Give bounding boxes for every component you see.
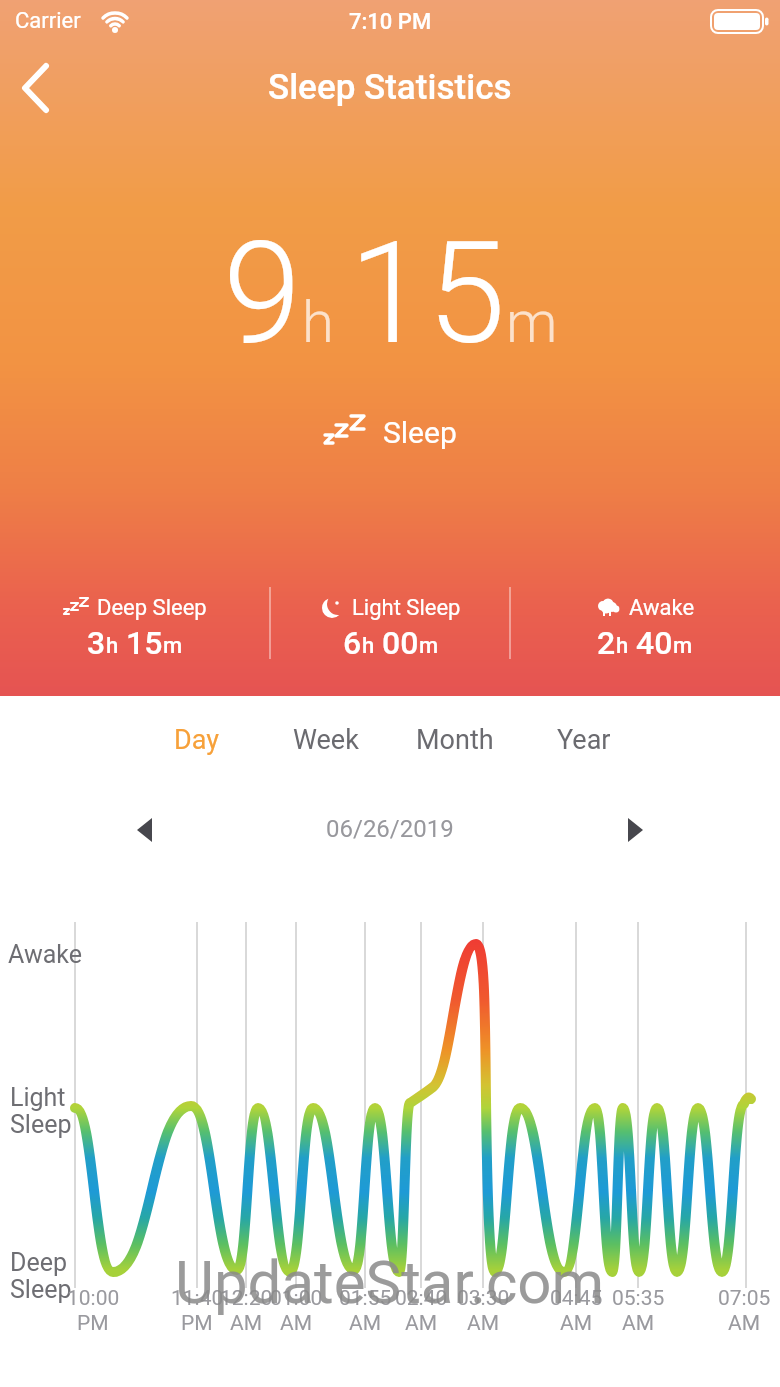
staticText: h: [362, 633, 375, 659]
staticText: Week: [293, 724, 359, 756]
button[interactable]: Day: [132, 714, 261, 766]
staticText: PM: [181, 1311, 213, 1336]
staticText: Awake: [8, 940, 82, 969]
staticText: Deep Sleep: [97, 595, 207, 621]
staticText: Deep: [10, 1248, 67, 1277]
staticText: Sleep Statistics: [268, 67, 512, 108]
staticText: AM: [349, 1311, 382, 1336]
staticText: h: [302, 288, 334, 356]
staticText: 01:00: [270, 1286, 323, 1311]
staticText: 02:40: [395, 1286, 448, 1311]
button[interactable]: Week: [261, 714, 390, 766]
staticText: 04:45: [550, 1286, 603, 1311]
staticText: 7:10 PM: [349, 9, 432, 35]
button[interactable]: [8, 60, 64, 116]
staticText: 00: [382, 624, 419, 662]
button[interactable]: Awake: [515, 589, 775, 667]
staticText: h: [616, 633, 629, 659]
staticText: m: [506, 288, 558, 356]
button[interactable]: Deep Sleep: [5, 589, 265, 667]
staticText: Sleep: [10, 1110, 72, 1139]
staticText: Light: [10, 1083, 66, 1112]
staticText: m: [673, 633, 693, 659]
staticText: AM: [622, 1311, 655, 1336]
staticText: 01:55: [339, 1286, 392, 1311]
staticText: AM: [405, 1311, 438, 1336]
button[interactable]: Light Sleep: [260, 589, 520, 667]
staticText: Awake: [629, 595, 695, 621]
staticText: AM: [280, 1311, 313, 1336]
staticText: Light Sleep: [352, 595, 461, 621]
staticText: AM: [728, 1311, 761, 1336]
staticText: Year: [557, 724, 611, 756]
staticText: 15: [126, 624, 163, 662]
staticText: Month: [416, 724, 494, 756]
staticText: 2: [597, 624, 616, 662]
staticText: m: [163, 633, 183, 659]
staticText: 6: [343, 624, 362, 662]
staticText: AM: [560, 1311, 593, 1336]
staticText: 12:20: [220, 1286, 273, 1311]
staticText: h: [106, 633, 119, 659]
staticText: m: [419, 633, 439, 659]
staticText: AM: [230, 1311, 263, 1336]
staticText: 15: [349, 211, 506, 376]
staticText: 9: [223, 211, 302, 376]
staticText: PM: [77, 1311, 109, 1336]
staticText: 40: [636, 624, 673, 662]
staticText: 11:40: [171, 1286, 224, 1311]
staticText: 05:35: [612, 1286, 665, 1311]
staticText: Sleep: [10, 1275, 72, 1304]
staticText: 3: [87, 624, 106, 662]
staticText: 03:30: [457, 1286, 510, 1311]
staticText: AM: [467, 1311, 500, 1336]
button[interactable]: Month: [390, 714, 519, 766]
button[interactable]: [120, 806, 168, 854]
staticText: 10:00: [67, 1286, 120, 1311]
button[interactable]: Year: [519, 714, 648, 766]
staticText: 06/26/2019: [326, 815, 454, 843]
staticText: 07:05: [718, 1286, 771, 1311]
button[interactable]: [612, 806, 660, 854]
staticText: Carrier: [15, 8, 81, 34]
staticText: UpdateStar.com: [175, 1247, 605, 1317]
staticText: Day: [174, 724, 219, 756]
staticText: Sleep: [383, 415, 457, 450]
